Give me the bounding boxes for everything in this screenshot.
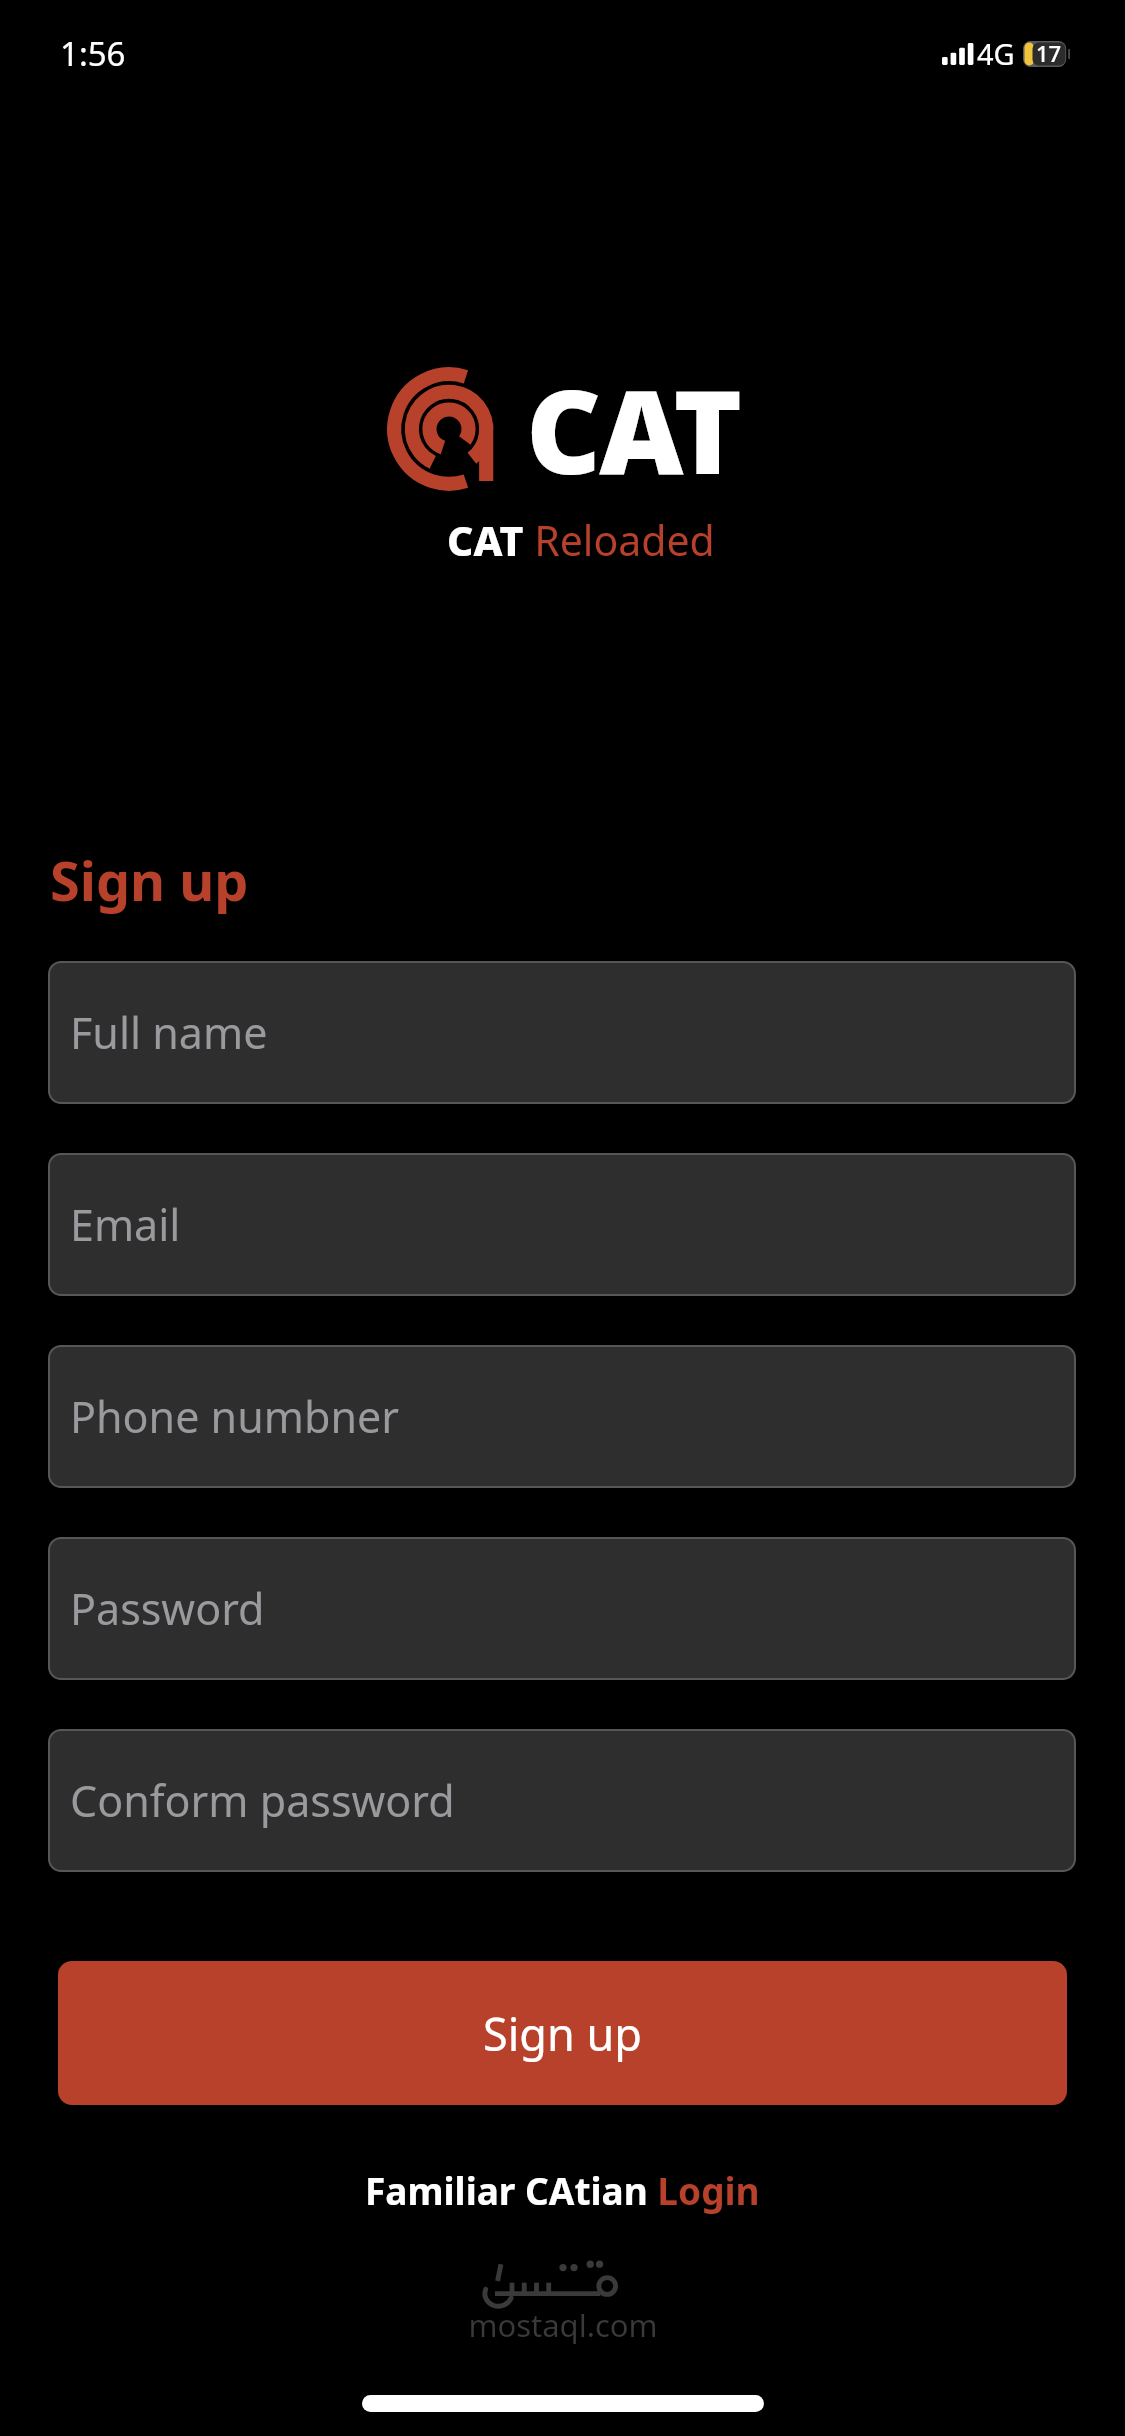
staticText: 4G xyxy=(977,34,1015,73)
staticText: 17 xyxy=(1036,38,1062,68)
button[interactable]: Full name xyxy=(48,961,1076,1104)
button[interactable]: Password xyxy=(48,1537,1076,1680)
staticText: Sign up xyxy=(483,2003,642,2064)
staticText: Full name xyxy=(70,1003,268,1062)
button[interactable]: Sign up xyxy=(58,1961,1067,2105)
staticText: Phone numbner xyxy=(70,1387,399,1446)
button[interactable]: Conform password xyxy=(48,1729,1076,1872)
staticText: mostaql.com xyxy=(468,2304,658,2346)
staticText: Email xyxy=(70,1195,181,1254)
staticText: Password xyxy=(70,1579,265,1638)
staticText: CAT xyxy=(526,350,740,508)
button[interactable]: Email xyxy=(48,1153,1076,1296)
staticText: 1:56 xyxy=(60,31,126,76)
staticText: Conform password xyxy=(70,1771,455,1830)
staticText: CAT Reloaded xyxy=(447,512,715,568)
staticText: Sign up xyxy=(50,843,249,917)
staticText: Familiar CAtian Login xyxy=(365,2165,760,2215)
button[interactable]: Phone numbner xyxy=(48,1345,1076,1488)
button[interactable]: Familiar CAtian Login xyxy=(365,2165,760,2215)
